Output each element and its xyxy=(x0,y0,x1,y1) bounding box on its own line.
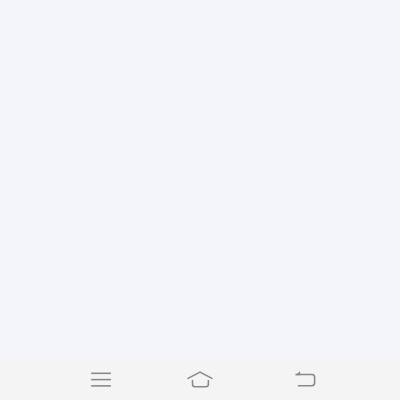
button[interactable]: Home xyxy=(150,357,250,400)
button[interactable]: Back xyxy=(255,357,355,400)
button[interactable]: Recent apps xyxy=(51,357,151,400)
